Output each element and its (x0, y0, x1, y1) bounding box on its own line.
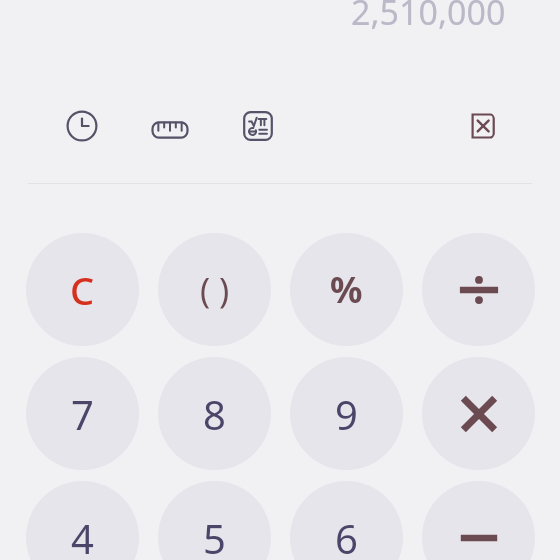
button[interactable]: ( ) (158, 233, 271, 346)
button[interactable]: Subtract (422, 481, 535, 560)
button[interactable]: 9 (290, 357, 403, 470)
button[interactable]: 5 (158, 481, 271, 560)
staticText: 6 (335, 511, 358, 560)
staticText: C (70, 264, 95, 316)
staticText: 8 (203, 387, 226, 441)
button[interactable]: Scientific functions (239, 107, 277, 145)
button[interactable]: History (64, 108, 100, 144)
button[interactable]: 4 (26, 481, 139, 560)
staticText: ( ) (200, 267, 230, 313)
button[interactable]: 8 (158, 357, 271, 470)
button[interactable]: Unit converter (148, 108, 192, 152)
staticText: % (330, 265, 363, 314)
staticText: 9 (335, 387, 358, 441)
button[interactable]: Divide (422, 233, 535, 346)
staticText: 5 (203, 511, 226, 560)
button[interactable]: % (290, 233, 403, 346)
button[interactable]: C (26, 233, 139, 346)
staticText: 7 (71, 387, 94, 441)
button[interactable]: Backspace (461, 108, 497, 144)
button[interactable]: 7 (26, 357, 139, 470)
button[interactable]: 6 (290, 481, 403, 560)
button[interactable]: Multiply (422, 357, 535, 470)
staticText: 4 (71, 511, 94, 560)
